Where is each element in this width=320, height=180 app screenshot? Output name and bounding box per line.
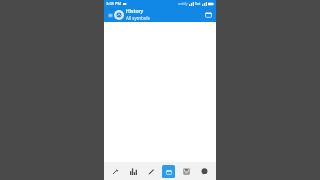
staticText: Sat [195,1,201,6]
button[interactable]: Chart [127,165,140,178]
button[interactable]: Calendar [162,165,175,178]
staticText: All symbols [126,15,150,21]
staticText: 3:05 PM [106,1,122,6]
button[interactable]: Pin [109,165,122,178]
staticText: notify [178,1,188,6]
button[interactable]: Save [180,165,193,178]
staticText: History [126,8,144,15]
button[interactable]: Draw [145,165,158,178]
button[interactable]: Comment [198,165,211,178]
button[interactable]: Account [114,10,124,20]
button[interactable]: History [126,8,203,21]
button[interactable]: Navigate up [106,11,114,19]
button[interactable]: Calendar [203,9,214,20]
